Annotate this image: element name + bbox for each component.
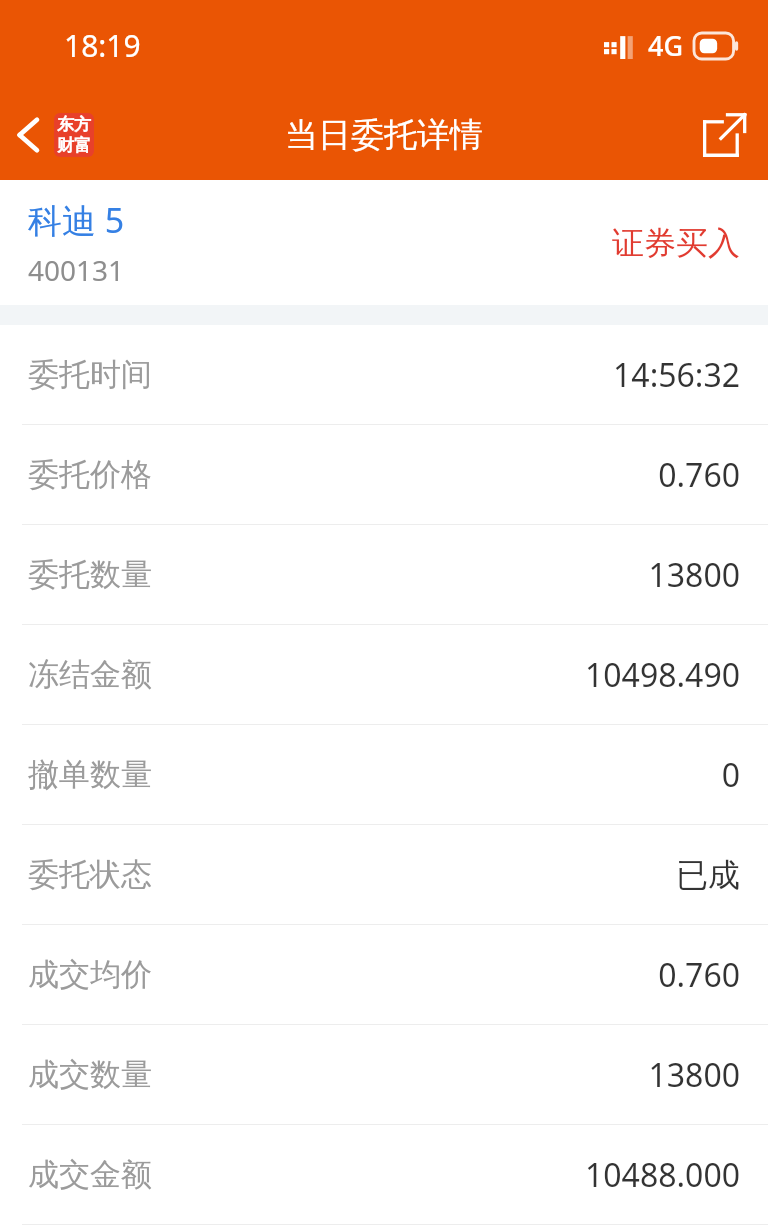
staticText: 13800 [648, 1053, 740, 1097]
staticText: 成交金额 [28, 1155, 152, 1194]
staticText: 证券买入 [612, 223, 740, 263]
button[interactable]: 冻结金额 [0, 625, 768, 724]
staticText: 当日委托详情 [285, 114, 483, 156]
staticText: 0 [721, 753, 740, 797]
staticText: 成交均价 [28, 955, 152, 994]
staticText: 委托时间 [28, 355, 152, 394]
button[interactable]: Back to 东方财富 [0, 105, 104, 165]
staticText: 财富 [57, 135, 91, 156]
staticText: 18:19 [64, 25, 141, 66]
button[interactable]: 科迪 5 [0, 180, 768, 305]
button[interactable]: 委托价格 [0, 425, 768, 524]
staticText: 10488.000 [584, 1153, 740, 1197]
staticText: 已成 [676, 855, 740, 895]
staticText: 400131 [28, 251, 125, 289]
staticText: 委托数量 [28, 555, 152, 594]
staticText: 撤单数量 [28, 755, 152, 794]
button[interactable]: Share [680, 99, 768, 171]
button[interactable]: 成交数量 [0, 1025, 768, 1124]
staticText: 东方 [57, 114, 91, 135]
button[interactable]: 成交均价 [0, 925, 768, 1024]
staticText: 4G [648, 27, 684, 64]
button[interactable]: 委托时间 [0, 325, 768, 424]
staticText: 委托状态 [28, 855, 152, 894]
staticText: 科迪 5 [28, 197, 125, 243]
button[interactable]: 委托状态 [0, 825, 768, 924]
button[interactable]: 委托数量 [0, 525, 768, 624]
staticText: 13800 [648, 553, 740, 597]
staticText: 0.760 [658, 453, 740, 497]
staticText: 冻结金额 [28, 655, 152, 694]
staticText: 委托价格 [28, 455, 152, 494]
staticText: 10498.490 [584, 653, 740, 697]
staticText: 0.760 [658, 953, 740, 997]
staticText: 成交数量 [28, 1055, 152, 1094]
button[interactable]: 撤单数量 [0, 725, 768, 824]
staticText: 14:56:32 [613, 353, 740, 397]
button[interactable]: 成交金额 [0, 1125, 768, 1224]
